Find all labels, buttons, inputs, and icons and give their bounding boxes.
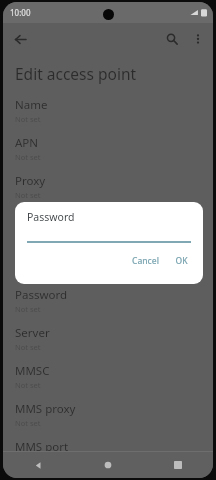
- staticText: OK: [175, 255, 188, 267]
- staticText: MMSC: [15, 363, 50, 379]
- staticText: Port: [15, 211, 38, 227]
- button[interactable]: More options: [185, 26, 211, 52]
- button[interactable]: Search: [159, 26, 185, 52]
- button[interactable]: MMSC: [3, 357, 213, 395]
- staticText: Not set: [15, 304, 41, 314]
- staticText: Not set: [15, 190, 41, 200]
- button[interactable]: Back: [3, 452, 73, 478]
- button[interactable]: Proxy: [3, 167, 213, 205]
- button[interactable]: OK: [170, 253, 193, 269]
- staticText: Password: [15, 287, 68, 303]
- button[interactable]: Name: [3, 91, 213, 129]
- staticText: MMS port: [15, 439, 69, 455]
- button[interactable]: MMS port: [3, 433, 213, 471]
- button[interactable]: Cancel: [127, 253, 164, 269]
- staticText: Not set: [15, 152, 41, 162]
- staticText: Not set: [15, 342, 41, 352]
- button[interactable]: Username: [3, 243, 213, 281]
- staticText: Proxy: [15, 173, 46, 189]
- button[interactable]: Navigate up: [7, 26, 33, 52]
- button[interactable]: APN: [3, 129, 213, 167]
- staticText: Name: [15, 97, 48, 113]
- button[interactable]: Server: [3, 319, 213, 357]
- staticText: Not set: [15, 456, 41, 466]
- staticText: Not set: [15, 418, 41, 428]
- button[interactable]: Port: [3, 205, 213, 243]
- staticText: Cancel: [132, 255, 159, 267]
- staticText: Not set: [15, 380, 41, 390]
- staticText: Password: [27, 210, 75, 224]
- button[interactable]: Password: [3, 281, 213, 319]
- staticText: 10:00: [10, 7, 31, 18]
- staticText: Edit access point: [15, 63, 137, 84]
- staticText: APN: [15, 135, 39, 151]
- staticText: Not set: [15, 114, 41, 124]
- button[interactable]: Home: [73, 452, 143, 478]
- button[interactable]: Recent apps: [143, 452, 213, 478]
- button[interactable]: MMS proxy: [3, 395, 213, 433]
- staticText: Server: [15, 325, 50, 341]
- staticText: MMS proxy: [15, 401, 76, 417]
